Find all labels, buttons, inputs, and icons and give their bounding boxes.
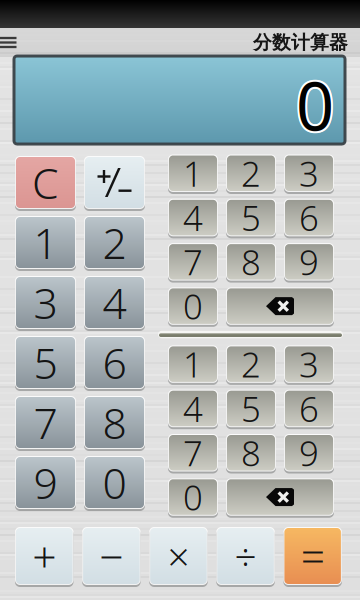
- staticText: −: [99, 528, 123, 584]
- staticText: 7: [183, 239, 203, 285]
- button[interactable]: ÷: [216, 527, 275, 585]
- staticText: 0: [296, 62, 334, 150]
- staticText: 9: [33, 454, 57, 511]
- staticText: 0: [296, 61, 334, 149]
- button[interactable]: 4: [168, 199, 218, 236]
- staticText: =: [301, 528, 325, 584]
- staticText: 1: [33, 214, 57, 271]
- staticText: 7: [33, 394, 57, 451]
- button[interactable]: 0: [168, 287, 218, 325]
- button[interactable]: 7: [168, 243, 218, 281]
- staticText: 5: [33, 334, 57, 391]
- staticText: 4: [183, 385, 203, 431]
- button[interactable]: Backspace: [226, 287, 334, 325]
- button[interactable]: 0: [84, 456, 145, 509]
- staticText: 3: [299, 341, 319, 387]
- staticText: 0: [297, 59, 335, 148]
- staticText: ÷: [234, 530, 256, 582]
- button[interactable]: 6: [284, 390, 334, 427]
- button[interactable]: 7: [168, 434, 218, 471]
- button[interactable]: 8: [84, 396, 145, 449]
- staticText: 0: [102, 454, 126, 511]
- staticText: 3: [299, 150, 319, 196]
- staticText: 8: [241, 430, 261, 476]
- staticText: 8: [102, 394, 126, 451]
- button[interactable]: +: [15, 527, 73, 585]
- staticText: 3: [33, 274, 57, 331]
- button[interactable]: 1: [168, 345, 218, 383]
- staticText: 5: [241, 194, 261, 240]
- button[interactable]: 2: [84, 216, 145, 269]
- staticText: 2: [241, 341, 261, 387]
- staticText: 0: [294, 62, 332, 151]
- button[interactable]: 6: [284, 199, 334, 236]
- staticText: 0: [296, 60, 334, 148]
- button[interactable]: 4: [168, 390, 218, 427]
- staticText: 4: [102, 274, 126, 331]
- staticText: 0: [294, 61, 332, 149]
- staticText: 1: [183, 150, 203, 196]
- staticText: 6: [299, 385, 319, 431]
- staticText: 4: [183, 194, 203, 240]
- button[interactable]: 1: [168, 154, 218, 192]
- staticText: 9: [299, 239, 319, 285]
- button[interactable]: 0: [168, 478, 218, 516]
- staticText: 0: [294, 59, 332, 148]
- staticText: 8: [241, 239, 261, 285]
- staticText: 0: [295, 61, 333, 149]
- staticText: 0: [298, 61, 336, 149]
- button[interactable]: ×: [149, 527, 208, 585]
- button[interactable]: 8: [226, 434, 276, 471]
- button[interactable]: 3: [284, 345, 334, 383]
- button[interactable]: 2: [226, 345, 276, 383]
- staticText: 0: [297, 61, 335, 149]
- button[interactable]: Menu: [0, 27, 16, 57]
- button[interactable]: 2: [226, 154, 276, 192]
- staticText: 9: [299, 430, 319, 476]
- button[interactable]: 9: [284, 434, 334, 471]
- staticText: +: [32, 528, 56, 584]
- button[interactable]: 9: [284, 243, 334, 281]
- button[interactable]: 1: [15, 216, 76, 269]
- button[interactable]: 7: [15, 396, 76, 449]
- staticText: 2: [102, 214, 126, 271]
- button[interactable]: Backspace: [226, 478, 334, 516]
- staticText: ×: [167, 530, 189, 582]
- button[interactable]: −: [82, 527, 141, 585]
- staticText: 0: [183, 283, 203, 329]
- staticText: 7: [183, 430, 203, 476]
- button[interactable]: 8: [226, 243, 276, 281]
- button[interactable]: 4: [84, 276, 145, 329]
- staticText: 2: [241, 150, 261, 196]
- button[interactable]: =: [283, 527, 342, 585]
- staticText: 0: [296, 59, 334, 147]
- button[interactable]: C: [15, 156, 76, 209]
- button[interactable]: 9: [15, 456, 76, 509]
- staticText: 0: [296, 63, 334, 151]
- button[interactable]: 6: [84, 336, 145, 389]
- staticText: 5: [241, 385, 261, 431]
- button[interactable]: 3: [15, 276, 76, 329]
- staticText: 分数计算器: [253, 31, 348, 54]
- staticText: 0: [297, 62, 335, 151]
- button[interactable]: 5: [226, 199, 276, 236]
- staticText: 0: [183, 474, 203, 520]
- button[interactable]: 5: [226, 390, 276, 427]
- button[interactable]: 3: [284, 154, 334, 192]
- staticText: 6: [102, 334, 126, 391]
- staticText: 1: [183, 341, 203, 387]
- staticText: C: [32, 154, 59, 211]
- button[interactable]: Plus minus: [84, 156, 145, 209]
- button[interactable]: 5: [15, 336, 76, 389]
- staticText: 6: [299, 194, 319, 240]
